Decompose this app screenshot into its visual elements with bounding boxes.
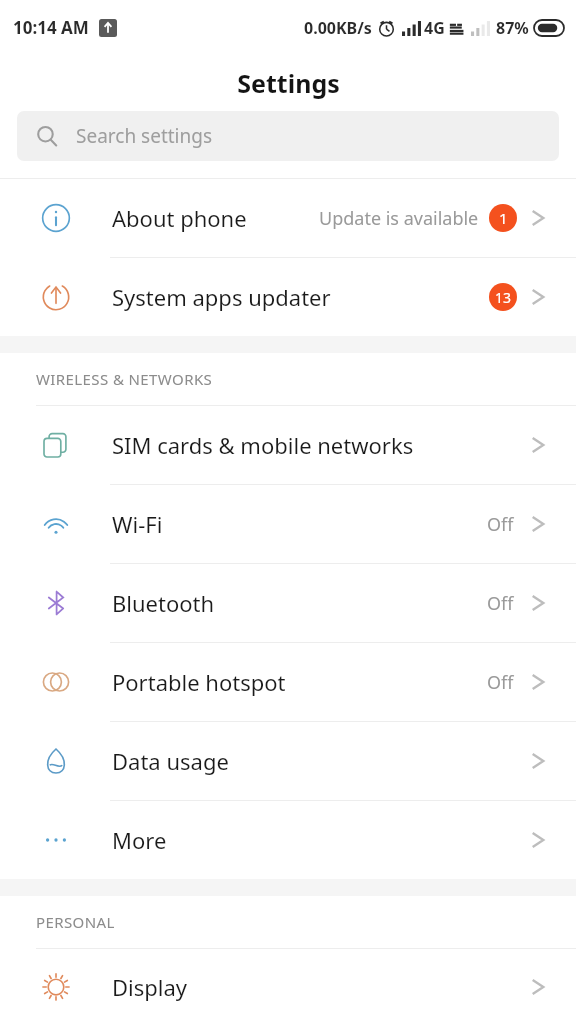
staticText: Off: [487, 591, 514, 616]
staticText: 87%: [496, 17, 529, 39]
button[interactable]: Display: [0, 949, 576, 1024]
staticText: PERSONAL: [36, 912, 115, 932]
staticText: Update is available: [319, 206, 479, 231]
staticText: 4G: [424, 17, 445, 39]
button[interactable]: Wi-Fi: [0, 485, 576, 563]
staticText: WIRELESS & NETWORKS: [36, 369, 213, 389]
button[interactable]: More: [0, 801, 576, 879]
staticText: Settings: [237, 66, 340, 100]
staticText: 0.00KB/s: [304, 17, 372, 39]
staticText: System apps updater: [112, 282, 489, 312]
staticText: Search settings: [76, 123, 213, 149]
staticText: About phone: [112, 203, 319, 233]
staticText: Bluetooth: [112, 588, 487, 618]
staticText: 13: [495, 288, 512, 307]
button[interactable]: System apps updater: [0, 258, 576, 336]
staticText: 1: [499, 208, 508, 228]
staticText: Wi-Fi: [112, 509, 487, 539]
staticText: 10:14 AM: [13, 16, 89, 39]
button[interactable]: Search settings: [17, 111, 559, 161]
staticText: Data usage: [112, 746, 531, 776]
staticText: Portable hotspot: [112, 667, 487, 697]
button[interactable]: About phone: [0, 179, 576, 257]
button[interactable]: Portable hotspot: [0, 643, 576, 721]
button[interactable]: SIM cards & mobile networks: [0, 406, 576, 484]
staticText: Off: [487, 512, 514, 537]
staticText: Off: [487, 670, 514, 695]
staticText: SIM cards & mobile networks: [112, 430, 531, 460]
staticText: More: [112, 825, 531, 855]
staticText: Display: [112, 972, 531, 1002]
button[interactable]: Data usage: [0, 722, 576, 800]
button[interactable]: Bluetooth: [0, 564, 576, 642]
